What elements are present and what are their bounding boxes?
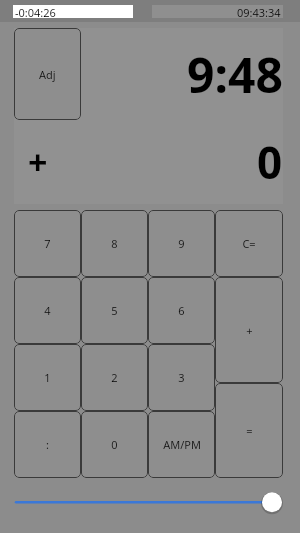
- button[interactable]: 9: [148, 210, 215, 277]
- button[interactable]: 4: [14, 277, 81, 344]
- staticText: 9: [178, 236, 185, 251]
- button[interactable]: 09:43:34: [152, 5, 283, 18]
- staticText: 09:43:34: [237, 5, 281, 18]
- staticText: 2: [111, 370, 118, 385]
- button[interactable]: :: [14, 411, 81, 478]
- button[interactable]: 6: [148, 277, 215, 344]
- button[interactable]: 8: [81, 210, 148, 277]
- staticText: 1: [44, 370, 51, 385]
- staticText: 6: [178, 303, 185, 318]
- button[interactable]: Adj: [14, 28, 81, 120]
- button[interactable]: Adjust slider: [0, 480, 300, 533]
- staticText: 9:48: [187, 42, 283, 107]
- staticText: :: [46, 437, 49, 452]
- staticText: 3: [178, 370, 185, 385]
- staticText: =: [246, 423, 253, 438]
- button[interactable]: 2: [81, 344, 148, 411]
- button[interactable]: 1: [14, 344, 81, 411]
- button[interactable]: +: [215, 277, 283, 383]
- button[interactable]: C=: [215, 210, 283, 277]
- button[interactable]: 3: [148, 344, 215, 411]
- button[interactable]: =: [215, 383, 283, 478]
- staticText: 0: [111, 437, 118, 452]
- staticText: +: [246, 323, 253, 338]
- staticText: 8: [111, 236, 118, 251]
- staticText: C=: [242, 236, 256, 251]
- staticText: 0: [257, 132, 283, 192]
- staticText: -0:04:26: [15, 5, 56, 18]
- staticText: Adj: [39, 67, 56, 82]
- button[interactable]: -0:04:26: [13, 5, 133, 18]
- button[interactable]: AM/PM: [148, 411, 215, 478]
- button[interactable]: 7: [14, 210, 81, 277]
- button[interactable]: 0: [81, 411, 148, 478]
- staticText: 5: [111, 303, 118, 318]
- staticText: +: [28, 139, 48, 185]
- staticText: 4: [44, 303, 51, 318]
- button[interactable]: 5: [81, 277, 148, 344]
- staticText: 7: [44, 236, 51, 251]
- staticText: AM/PM: [163, 437, 201, 452]
